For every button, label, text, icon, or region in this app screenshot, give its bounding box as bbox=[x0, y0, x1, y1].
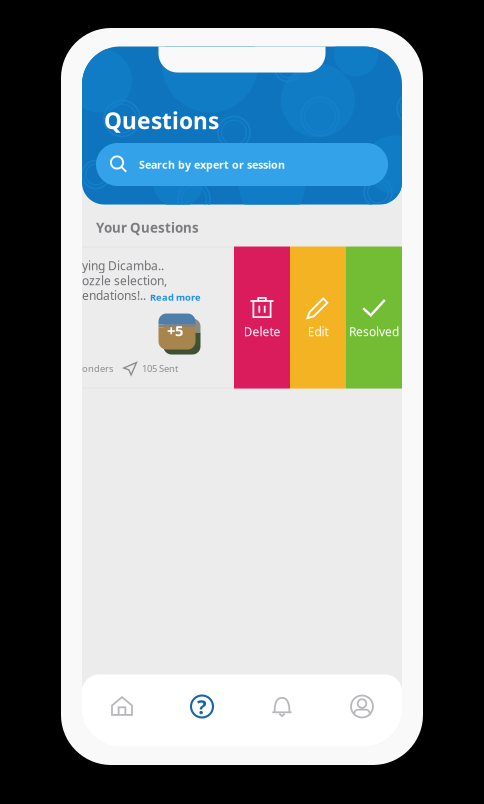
staticText: ? bbox=[197, 693, 207, 720]
staticText: ozzle selection, bbox=[82, 272, 167, 288]
staticText: Your Questions bbox=[96, 219, 199, 236]
staticText: endations!.. bbox=[82, 287, 146, 303]
button[interactable]: Edit bbox=[290, 246, 346, 388]
staticText: Read more bbox=[150, 291, 201, 303]
button[interactable]: Search by expert or session bbox=[96, 143, 388, 186]
button[interactable]: Notifications bbox=[242, 686, 322, 726]
staticText: 105 Sent bbox=[142, 362, 178, 375]
staticText: Resolved bbox=[349, 323, 399, 339]
staticText: Edit bbox=[307, 323, 328, 339]
button[interactable]: Questions bbox=[162, 686, 242, 726]
button[interactable]: Read more bbox=[150, 291, 201, 303]
staticText: Search by expert or session bbox=[139, 157, 285, 172]
staticText: ying Dicamba.. bbox=[82, 258, 164, 273]
button[interactable]: Delete bbox=[234, 246, 290, 388]
staticText: +5 bbox=[167, 321, 183, 340]
staticText: Questions bbox=[104, 105, 219, 135]
button[interactable]: Resolved bbox=[346, 246, 402, 388]
button[interactable]: Home bbox=[82, 686, 162, 726]
staticText: Delete bbox=[243, 323, 280, 339]
staticText: onders bbox=[82, 362, 113, 375]
button[interactable]: Profile bbox=[322, 686, 402, 726]
